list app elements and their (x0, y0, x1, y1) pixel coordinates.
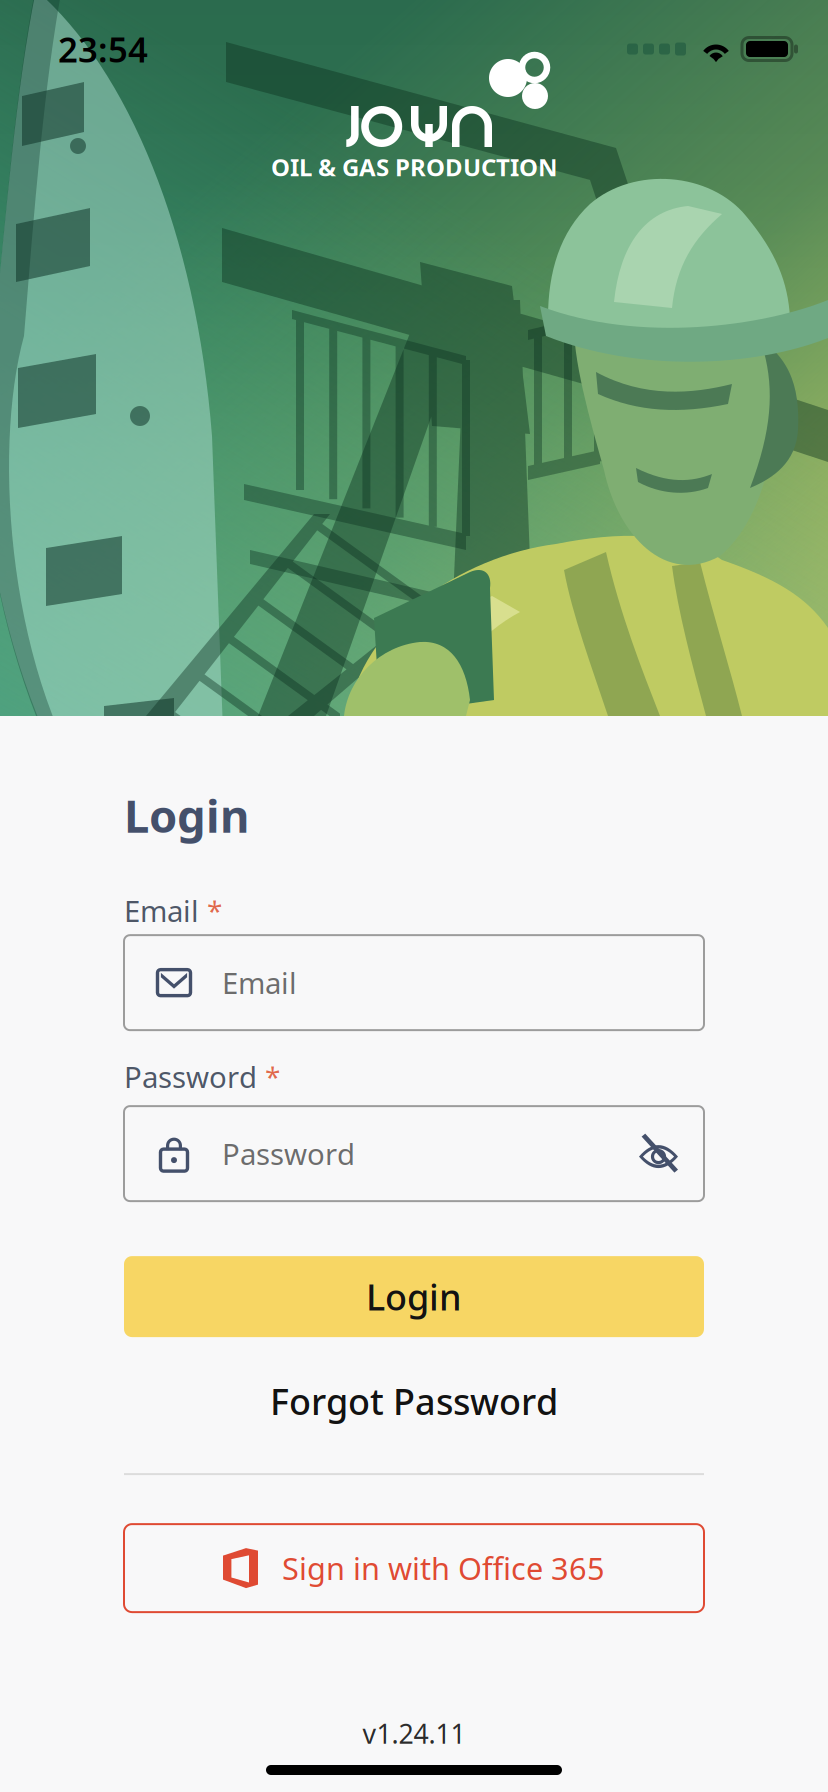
staticText: * (207, 892, 222, 929)
staticText: * (265, 1058, 280, 1095)
staticText: Login (366, 1273, 462, 1320)
button[interactable]: Forgot Password (124, 1363, 704, 1439)
staticText: Login (124, 785, 249, 845)
staticText: Forgot Password (270, 1377, 558, 1425)
staticText: Email (124, 891, 199, 930)
staticText: Password (222, 1134, 355, 1173)
staticText: Password (124, 1057, 257, 1096)
staticText: v1.24.11 (362, 1716, 465, 1751)
staticText: Sign in with Office 365 (282, 1548, 605, 1588)
button[interactable]: Login (124, 1256, 704, 1337)
staticText: 23:54 (58, 26, 148, 72)
staticText: Email (222, 963, 297, 1002)
button[interactable]: Sign in with Office 365 (124, 1524, 704, 1612)
staticText: OIL & GAS PRODUCTION (271, 151, 558, 183)
